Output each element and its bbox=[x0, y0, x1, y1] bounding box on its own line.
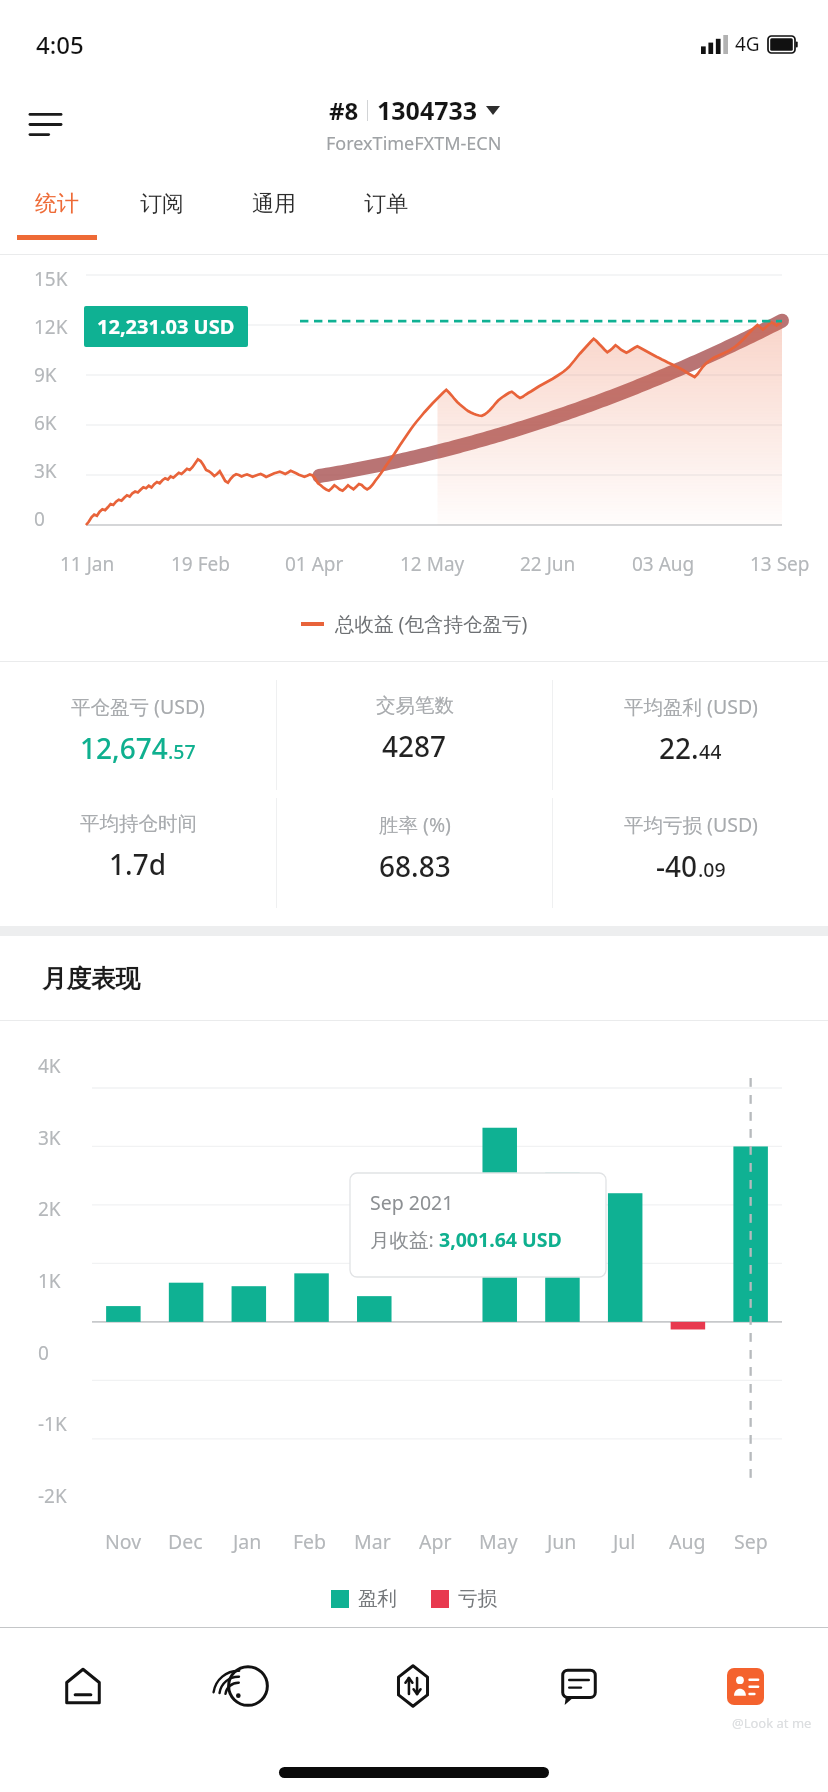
staticText: -2K bbox=[38, 1483, 67, 1509]
staticText: 2K bbox=[38, 1196, 61, 1222]
button[interactable]: 通用 bbox=[218, 168, 330, 254]
staticText: 订阅 bbox=[140, 190, 184, 218]
staticText: -1K bbox=[38, 1411, 67, 1437]
staticText: Nov bbox=[105, 1528, 142, 1555]
staticText: 12,231.03 USD bbox=[97, 313, 235, 340]
staticText: 月度表现 bbox=[42, 963, 140, 994]
staticText: 15K bbox=[34, 266, 68, 292]
button[interactable]: Menu bbox=[16, 95, 74, 153]
button[interactable]: 胜率 (%) bbox=[277, 798, 552, 908]
button[interactable]: 平均盈利 (USD) bbox=[553, 680, 828, 790]
staticText: #8 bbox=[329, 94, 359, 127]
staticText: Mar bbox=[354, 1528, 391, 1555]
staticText: 1304733 bbox=[377, 93, 478, 127]
staticText: 3,001.64 USD bbox=[439, 1226, 562, 1253]
staticText: 01 Apr bbox=[285, 551, 344, 577]
staticText: 1K bbox=[38, 1268, 61, 1294]
button[interactable]: 平均持仓时间 bbox=[0, 798, 276, 908]
staticText: Feb bbox=[293, 1528, 327, 1555]
staticText: ForexTimeFXTM-ECN bbox=[326, 131, 502, 156]
staticText: @Look at me bbox=[732, 1714, 812, 1732]
button[interactable]: Accounts bbox=[662, 1628, 828, 1744]
staticText: 统计 bbox=[35, 190, 79, 218]
staticText: 4K bbox=[38, 1053, 61, 1079]
button[interactable]: 统计 bbox=[8, 168, 106, 254]
staticText: 68.83 bbox=[379, 847, 451, 885]
staticText: -40 bbox=[656, 847, 698, 885]
staticText: 03 Aug bbox=[632, 551, 695, 577]
staticText: 4G bbox=[735, 31, 760, 57]
button[interactable]: Messages bbox=[496, 1628, 662, 1744]
staticText: Aug bbox=[669, 1528, 706, 1555]
staticText: Jul bbox=[613, 1528, 636, 1555]
staticText: 总收益 (包含持仓盈亏) bbox=[335, 610, 528, 637]
button[interactable]: 订单 bbox=[330, 168, 442, 254]
staticText: 12K bbox=[34, 314, 68, 340]
staticText: 平仓盈亏 (USD) bbox=[71, 693, 205, 720]
staticText: Sep bbox=[734, 1528, 768, 1555]
staticText: Jan bbox=[233, 1528, 262, 1555]
staticText: May bbox=[479, 1528, 518, 1555]
staticText: 12 May bbox=[400, 551, 465, 577]
staticText: Dec bbox=[168, 1528, 203, 1555]
staticText: 11 Jan bbox=[60, 551, 115, 577]
button[interactable]: 交易笔数 bbox=[277, 680, 552, 790]
staticText: 月收益: bbox=[370, 1226, 439, 1253]
button[interactable]: 平仓盈亏 (USD) bbox=[0, 680, 276, 790]
staticText: 19 Feb bbox=[171, 551, 230, 577]
staticText: 平均盈利 (USD) bbox=[624, 693, 758, 720]
button[interactable]: 订阅 bbox=[106, 168, 218, 254]
staticText: 平均亏损 (USD) bbox=[624, 811, 758, 838]
staticText: 3K bbox=[34, 458, 57, 484]
staticText: Apr bbox=[419, 1528, 452, 1555]
staticText: .57 bbox=[168, 738, 196, 765]
staticText: 平均持仓时间 bbox=[80, 811, 197, 836]
staticText: 6K bbox=[34, 410, 57, 436]
staticText: 0 bbox=[38, 1340, 49, 1366]
staticText: 13 Sep bbox=[750, 551, 810, 577]
staticText: 12,674 bbox=[80, 729, 168, 767]
staticText: 盈利 bbox=[358, 1586, 397, 1611]
button[interactable]: 平均亏损 (USD) bbox=[553, 798, 828, 908]
button[interactable]: Home bbox=[0, 1628, 165, 1744]
staticText: 亏损 bbox=[458, 1586, 497, 1611]
button[interactable]: Trade bbox=[330, 1628, 496, 1744]
staticText: 0 bbox=[34, 506, 45, 532]
staticText: 44 bbox=[699, 738, 722, 765]
staticText: 订单 bbox=[364, 190, 408, 218]
staticText: Sep 2021 bbox=[370, 1189, 454, 1216]
staticText: 22. bbox=[659, 729, 699, 767]
staticText: 3K bbox=[38, 1125, 61, 1151]
button[interactable]: Signals bbox=[165, 1628, 330, 1744]
button[interactable]: #8 bbox=[326, 93, 502, 156]
staticText: 9K bbox=[34, 362, 57, 388]
staticText: .09 bbox=[698, 856, 726, 883]
staticText: 通用 bbox=[252, 190, 296, 218]
staticText: 交易笔数 bbox=[376, 693, 454, 718]
staticText: 胜率 (%) bbox=[379, 811, 451, 838]
staticText: 4287 bbox=[382, 727, 447, 765]
staticText: 4:05 bbox=[36, 28, 84, 61]
staticText: 1.7d bbox=[109, 845, 167, 883]
staticText: Jun bbox=[547, 1528, 577, 1555]
staticText: 22 Jun bbox=[520, 551, 576, 577]
